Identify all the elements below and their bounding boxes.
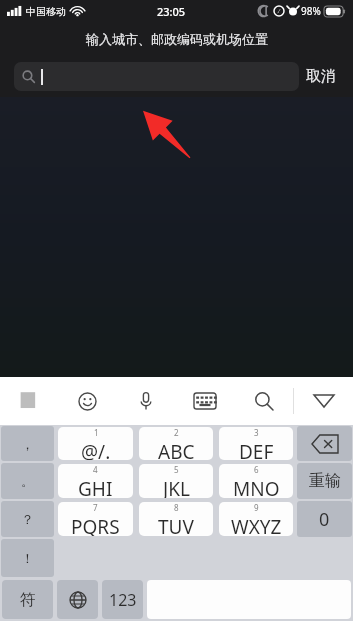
button[interactable]: 3 bbox=[219, 427, 293, 460]
button[interactable]: Clipboard bbox=[0, 377, 58, 425]
staticText: ， bbox=[21, 436, 34, 452]
staticText: 8 bbox=[174, 502, 179, 513]
button[interactable]: Keyboard settings bbox=[175, 377, 234, 425]
button[interactable]: 7 bbox=[58, 502, 133, 536]
button[interactable]: 2 bbox=[139, 427, 213, 460]
staticText: 6 bbox=[254, 464, 259, 475]
staticText: JKL bbox=[163, 476, 190, 498]
staticText: MNO bbox=[233, 476, 280, 498]
staticText: 7 bbox=[93, 502, 98, 513]
button[interactable]: ， bbox=[1, 426, 54, 461]
button[interactable]: 9 bbox=[219, 502, 293, 536]
button[interactable]: ！ bbox=[1, 539, 54, 577]
staticText: 1 bbox=[94, 427, 99, 438]
button[interactable] bbox=[14, 62, 299, 91]
button[interactable]: Hide keyboard bbox=[294, 377, 353, 425]
staticText: 输入城市、邮政编码或机场位置 bbox=[86, 31, 268, 47]
button[interactable]: Search bbox=[234, 377, 293, 425]
staticText: ？ bbox=[21, 511, 34, 527]
staticText: PQRS bbox=[71, 514, 120, 536]
staticText: 。 bbox=[21, 473, 34, 489]
staticText: 9 bbox=[254, 502, 259, 513]
button[interactable]: 5 bbox=[139, 464, 213, 498]
button[interactable]: 。 bbox=[1, 463, 54, 499]
button[interactable]: 123 bbox=[102, 580, 143, 619]
staticText: 中国移动 bbox=[26, 5, 66, 18]
staticText: ABC bbox=[158, 439, 195, 460]
button[interactable]: Emoji bbox=[58, 377, 116, 425]
button[interactable]: 4 bbox=[58, 464, 133, 498]
staticText: GHI bbox=[78, 476, 113, 498]
button[interactable]: 6 bbox=[219, 464, 293, 498]
button[interactable]: 重输 bbox=[297, 463, 352, 499]
staticText: WXYZ bbox=[231, 514, 282, 536]
staticText: DEF bbox=[239, 439, 274, 460]
button[interactable]: 1 bbox=[58, 427, 133, 460]
staticText: 123 bbox=[109, 589, 137, 611]
staticText: 2 bbox=[174, 427, 179, 438]
staticText: ！ bbox=[21, 550, 34, 566]
staticText: 符 bbox=[20, 590, 36, 610]
staticText: 98% bbox=[301, 4, 321, 18]
button[interactable]: Switch language bbox=[57, 580, 98, 619]
staticText: 3 bbox=[254, 427, 259, 438]
staticText: 4 bbox=[93, 464, 98, 475]
button[interactable]: 8 bbox=[139, 502, 213, 536]
button[interactable]: 0 bbox=[297, 501, 352, 537]
button[interactable]: Delete bbox=[297, 426, 352, 461]
staticText: 重输 bbox=[309, 471, 341, 491]
staticText: @/. bbox=[81, 439, 111, 460]
staticText: TUV bbox=[158, 514, 194, 536]
button[interactable]: Voice input bbox=[116, 377, 175, 425]
button[interactable]: ？ bbox=[1, 501, 54, 537]
button[interactable]: 取消 bbox=[299, 63, 343, 90]
staticText: 取消 bbox=[306, 67, 336, 86]
staticText: 5 bbox=[174, 464, 179, 475]
staticText: 23:05 bbox=[157, 4, 186, 19]
staticText: 0 bbox=[319, 507, 330, 532]
button[interactable]: 符 bbox=[2, 580, 53, 619]
